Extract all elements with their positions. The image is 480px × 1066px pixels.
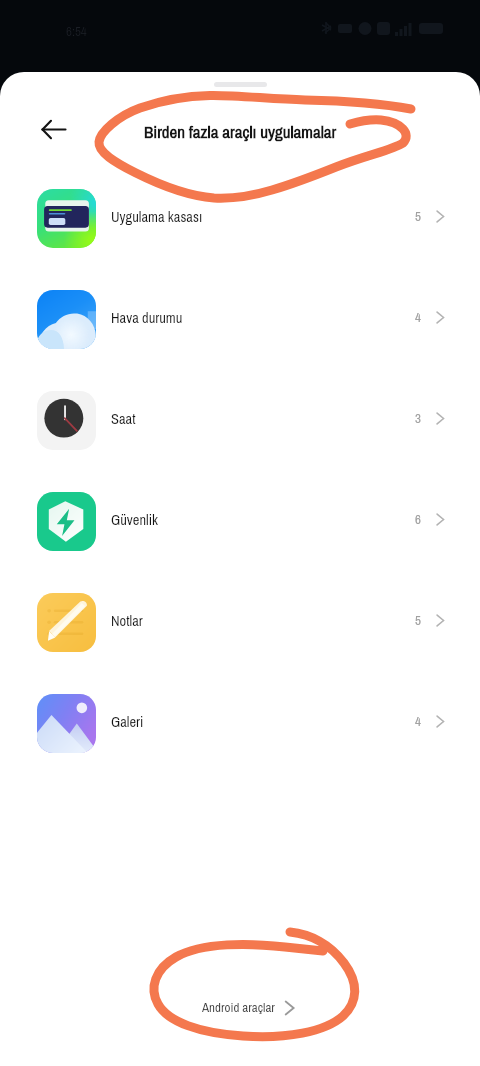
staticText: Saat (111, 409, 136, 429)
staticText: Hava durumu (111, 308, 183, 328)
staticText: 6 (415, 511, 421, 529)
button[interactable]: Android araçlar (202, 999, 299, 1017)
staticText: 4 (415, 309, 421, 327)
staticText: Birden fazla araçlı uygulamalar (144, 120, 337, 143)
button[interactable]: Güvenlik (0, 471, 480, 572)
button[interactable]: Galeri (0, 673, 480, 774)
staticText: 5 (415, 612, 421, 630)
staticText: Güvenlik (111, 510, 158, 530)
staticText: Galeri (111, 712, 144, 732)
staticText: Android araçlar (202, 999, 275, 1017)
button[interactable]: Back (29, 109, 77, 153)
staticText: Notlar (111, 611, 143, 631)
staticText: 5 (415, 208, 421, 226)
staticText: 6:54 (66, 23, 87, 41)
staticText: Uygulama kasası (111, 207, 203, 227)
button[interactable]: Hava durumu (0, 269, 480, 370)
button[interactable]: Notlar (0, 572, 480, 673)
button[interactable]: Saat (0, 370, 480, 471)
staticText: 3 (415, 410, 421, 428)
staticText: 4 (415, 713, 421, 731)
button[interactable]: Uygulama kasası (0, 168, 480, 269)
